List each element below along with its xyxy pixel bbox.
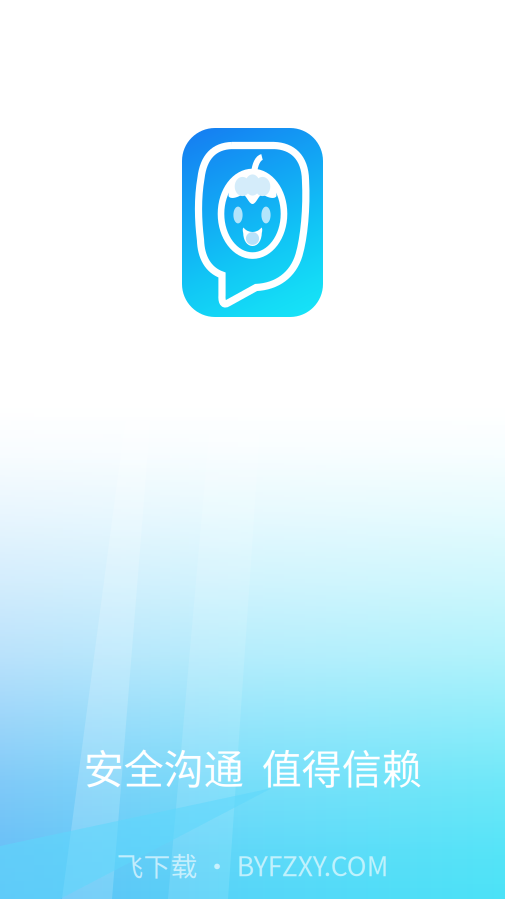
staticText: 飞下载 · BYFZXY.COM	[116, 845, 388, 884]
staticText: 安全沟通 值得信赖	[83, 737, 421, 795]
